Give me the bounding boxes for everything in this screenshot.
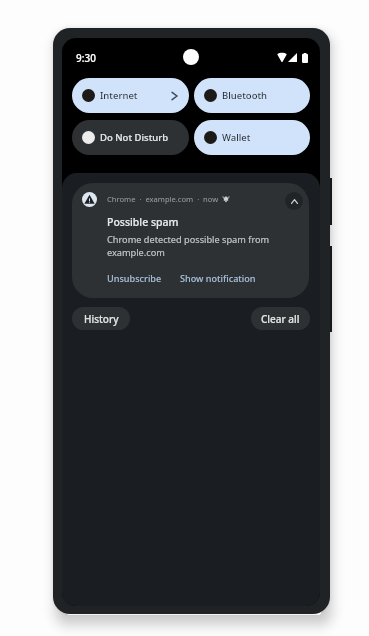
button[interactable]: Show notification bbox=[176, 269, 260, 287]
staticText: Show notification bbox=[180, 272, 256, 284]
button[interactable]: History bbox=[72, 307, 130, 330]
button[interactable]: Chrome · example.com · now bbox=[72, 183, 309, 298]
button[interactable]: Wallet bbox=[194, 120, 310, 155]
staticText: Wallet bbox=[222, 131, 251, 144]
staticText: History bbox=[84, 312, 119, 326]
button[interactable]: Collapse notification bbox=[285, 192, 303, 210]
button[interactable]: Bluetooth bbox=[194, 78, 310, 113]
staticText: Bluetooth bbox=[222, 89, 268, 102]
button[interactable]: Do Not Disturb bbox=[72, 120, 189, 155]
staticText: Clear all bbox=[261, 312, 300, 326]
staticText: Do Not Disturb bbox=[100, 131, 169, 144]
staticText: Unsubscribe bbox=[107, 272, 162, 284]
staticText: 9:30 bbox=[76, 51, 96, 65]
button[interactable]: Internet bbox=[72, 78, 189, 113]
staticText: Internet bbox=[100, 89, 138, 102]
staticText: Chrome · example.com · now bbox=[107, 194, 219, 204]
staticText: Chrome detected possible spam from examp… bbox=[107, 233, 270, 259]
staticText: Possible spam bbox=[107, 215, 179, 229]
button[interactable]: Unsubscribe bbox=[103, 269, 166, 287]
button[interactable]: Clear all bbox=[251, 307, 310, 330]
